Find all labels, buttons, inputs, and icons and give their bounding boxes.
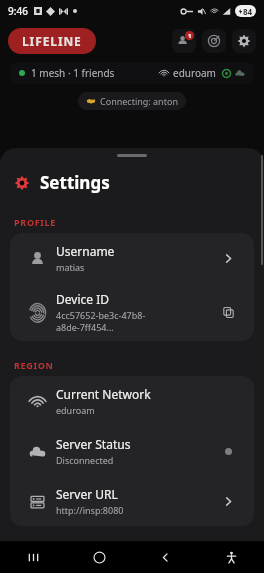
other: Server URL: [29, 493, 46, 510]
button[interactable]: Settings: [232, 29, 256, 53]
staticText: Server URL: [56, 486, 118, 502]
other: Connecting: [86, 96, 96, 106]
staticText: eduroam: [56, 404, 95, 416]
button[interactable]: Server: [10, 426, 254, 476]
other: Server: [29, 443, 46, 460]
staticText: eduroam: [173, 66, 216, 80]
other: Friends: [177, 34, 191, 48]
button[interactable]: Device: [10, 283, 254, 341]
staticText: matias: [56, 261, 85, 273]
staticText: 1: [188, 32, 192, 40]
button[interactable]: Friends: [172, 29, 196, 53]
staticText: a8de-7ff454...: [56, 321, 114, 333]
other: Radar: [207, 34, 221, 48]
button[interactable]: Profile: [10, 233, 254, 283]
other: Wi-Fi: [159, 68, 169, 78]
staticText: Current Network: [56, 386, 151, 402]
staticText: Disconnected: [56, 454, 114, 466]
staticText: LIFELINE: [22, 33, 82, 49]
button[interactable]: Radar: [202, 29, 226, 53]
button[interactable]: Server URL: [10, 476, 254, 526]
other: Copy device ID: [222, 306, 235, 319]
button[interactable]: Home: [66, 541, 132, 573]
staticText: 9:46: [8, 4, 28, 18]
staticText: Settings: [40, 171, 110, 194]
staticText: REGION: [14, 359, 54, 371]
staticText: 84: [243, 6, 253, 17]
staticText: Server Status: [56, 436, 131, 452]
staticText: Connecting: anton: [100, 95, 178, 107]
staticText: Device ID: [56, 291, 109, 307]
button[interactable]: Network: [10, 376, 254, 426]
other: Settings: [14, 175, 30, 191]
button[interactable]: 1 mesh · 1 friends: [10, 62, 254, 84]
staticText: 1 mesh · 1 friends: [31, 66, 115, 80]
button[interactable]: LIFELINE: [8, 28, 96, 54]
other: Open: [222, 495, 235, 508]
staticText: Username: [56, 243, 115, 259]
other: Device: [29, 304, 46, 321]
staticText: 4cc57652-be3c-47b8-: [56, 309, 146, 321]
other: Cloud: [235, 68, 245, 78]
staticText: http://insp:8080: [56, 504, 124, 516]
other: Settings: [237, 34, 251, 48]
button[interactable]: Recents: [0, 541, 66, 573]
staticText: PROFILE: [14, 216, 57, 228]
button[interactable]: Accessibility: [198, 541, 264, 573]
other: Open: [222, 252, 235, 265]
button[interactable]: Back: [132, 541, 198, 573]
other: Network: [29, 393, 46, 410]
button[interactable]: Connecting: [78, 92, 186, 110]
other: Profile: [29, 250, 46, 267]
